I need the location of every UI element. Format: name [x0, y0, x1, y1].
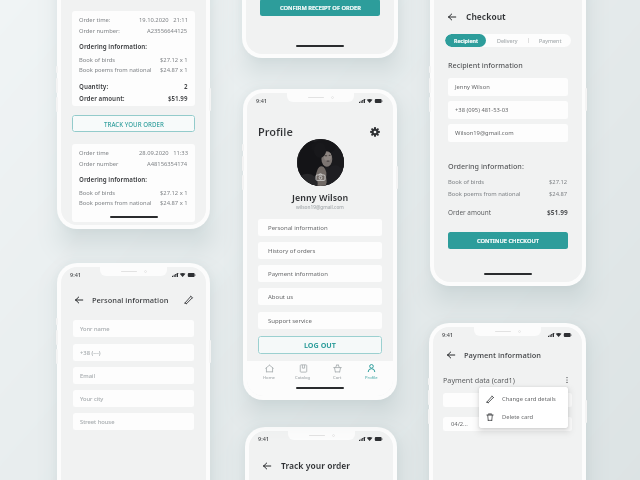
staticText: 9:41: [256, 97, 267, 104]
staticText: Order number: [79, 160, 119, 168]
staticText: Support service: [268, 317, 312, 325]
button[interactable]: Yonr name: [73, 320, 194, 337]
button[interactable]: Email: [73, 367, 194, 384]
staticText: History of orders: [268, 247, 316, 255]
staticText: 28.09.2020 11:33: [139, 149, 188, 157]
button[interactable]: About us: [258, 288, 382, 305]
staticText: wilson19@gmail.com: [296, 204, 344, 211]
button[interactable]: Jenny Wilson: [448, 78, 568, 96]
staticText: Order time: [79, 149, 109, 157]
staticText: LOG OUT: [304, 340, 336, 350]
staticText: Profile: [365, 375, 378, 381]
staticText: $24.87: [549, 190, 568, 198]
staticText: Home: [263, 375, 275, 381]
button[interactable]: More options: [561, 374, 572, 385]
button[interactable]: Delivery: [486, 34, 528, 47]
staticText: 9:41: [70, 271, 81, 278]
staticText: 9:41: [258, 435, 269, 442]
staticText: Yonr name: [80, 325, 110, 333]
button[interactable]: Payment information: [258, 265, 382, 282]
staticText: Cart: [333, 375, 342, 381]
button[interactable]: Recipient: [445, 34, 486, 47]
button[interactable]: CONFIRM RECEIPT OF ORDER: [260, 0, 380, 16]
staticText: Book poems from national: [448, 190, 521, 198]
staticText: Your city: [80, 395, 104, 403]
staticText: $51.99: [168, 94, 188, 102]
staticText: Recipient: [454, 37, 478, 44]
staticText: Book poems from national: [79, 199, 152, 207]
staticText: +38 (---): [80, 349, 101, 357]
staticText: Book of birds: [448, 178, 485, 186]
staticText: $27.12 x 1: [160, 189, 188, 197]
staticText: Payment data (card1): [443, 375, 515, 385]
staticText: Jenny Wilson: [292, 192, 349, 204]
staticText: Ordering information:: [79, 175, 148, 183]
staticText: Order time:: [79, 16, 111, 24]
staticText: A23556644125: [147, 27, 188, 35]
button[interactable]: Delete card: [479, 412, 568, 422]
staticText: Email: [80, 372, 95, 380]
button[interactable]: Personal information: [258, 219, 382, 236]
staticText: Delete card: [502, 413, 534, 421]
button[interactable]: History of orders: [258, 242, 382, 259]
button[interactable]: Back: [260, 459, 273, 472]
button[interactable]: Cart: [320, 361, 354, 383]
button[interactable]: Profile: [354, 361, 388, 383]
staticText: Profile: [258, 124, 293, 139]
staticText: 2: [184, 82, 188, 90]
staticText: A48156354174: [147, 160, 188, 168]
staticText: Personal information: [268, 224, 328, 232]
button[interactable]: Settings: [368, 125, 382, 139]
staticText: 04/2...: [451, 420, 468, 428]
staticText: Quantity:: [79, 82, 109, 90]
button[interactable]: Wilson19@gmail.com: [448, 124, 568, 142]
staticText: Payment: [539, 37, 562, 44]
staticText: TRACK YOUR ORDER: [104, 120, 164, 128]
staticText: $27.12 x 1: [160, 56, 188, 64]
button[interactable]: Your city: [73, 390, 194, 407]
staticText: Catalog: [295, 375, 311, 381]
button[interactable]: Street house: [73, 413, 194, 430]
button[interactable]: Change card details: [479, 394, 568, 404]
button[interactable]: Change photo: [297, 139, 344, 186]
button[interactable]: TRACK YOUR ORDER: [72, 115, 195, 132]
staticText: Jenny Wilson: [455, 83, 490, 91]
staticText: 9:41: [442, 331, 453, 338]
button[interactable]: Home: [252, 361, 286, 383]
staticText: Book of birds: [79, 189, 116, 197]
staticText: Street house: [80, 418, 115, 426]
staticText: Delivery: [497, 37, 518, 44]
button[interactable]: Back: [445, 10, 458, 23]
staticText: +38 (095) 481-53-03: [455, 106, 509, 114]
staticText: Change card details: [502, 395, 556, 403]
button[interactable]: +38 (095) 481-53-03: [448, 101, 568, 119]
button[interactable]: +38 (---): [73, 344, 194, 361]
staticText: Payment information: [268, 270, 328, 278]
staticText: Book poems from national: [79, 66, 152, 74]
button[interactable]: Payment: [529, 34, 571, 47]
staticText: Payment information: [464, 350, 542, 360]
staticText: CONTINUE CHECKOUT: [477, 237, 539, 245]
button[interactable]: Support service: [258, 312, 382, 329]
staticText: About us: [268, 293, 294, 301]
staticText: Ordering information:: [79, 42, 148, 50]
staticText: Order amount: [448, 208, 491, 217]
staticText: $51.99: [547, 208, 568, 217]
button[interactable]: Back: [444, 348, 457, 361]
staticText: CONFIRM RECEIPT OF ORDER: [280, 4, 361, 12]
button[interactable]: Edit: [182, 293, 195, 306]
button[interactable]: LOG OUT: [258, 336, 382, 354]
staticText: Ordering information:: [448, 161, 524, 171]
staticText: $24.87 x 1: [160, 199, 188, 207]
button[interactable]: Catalog: [286, 361, 320, 383]
staticText: Checkout: [466, 11, 506, 22]
staticText: Track your order: [281, 460, 351, 471]
staticText: Order number:: [79, 27, 120, 35]
staticText: $24.87 x 1: [160, 66, 188, 74]
button[interactable]: Back: [72, 293, 85, 306]
staticText: Book of birds: [79, 56, 116, 64]
button[interactable]: CONTINUE CHECKOUT: [448, 232, 568, 249]
staticText: Personal information: [92, 295, 169, 305]
staticText: Recipient information: [448, 60, 523, 70]
staticText: $27.12: [549, 178, 568, 186]
